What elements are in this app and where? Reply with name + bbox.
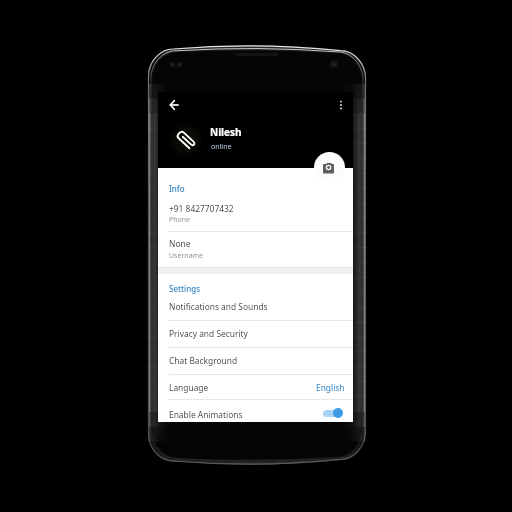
staticText: Language [169, 382, 209, 393]
button[interactable]: None [158, 232, 353, 266]
button[interactable]: Chat Background [158, 347, 353, 374]
staticText: Notifications and Sounds [169, 301, 268, 312]
staticText: Chat Background [169, 355, 238, 366]
button[interactable]: Enable Animations [158, 399, 353, 421]
button[interactable]: Profile photo [170, 124, 202, 156]
staticText: Info [169, 183, 185, 194]
button[interactable]: +91 8427707432 [158, 195, 353, 232]
button[interactable]: Notifications and Sounds [158, 293, 353, 320]
button[interactable]: Change photo [314, 152, 345, 183]
staticText: Enable Animations [169, 409, 243, 420]
staticText: Privacy and Security [169, 328, 248, 339]
staticText: Settings [169, 283, 201, 294]
staticText: Nilesh [210, 125, 242, 139]
staticText: Username [169, 251, 204, 261]
button[interactable]: Privacy and Security [158, 320, 353, 347]
button[interactable]: Back [162, 93, 186, 117]
staticText: None [169, 238, 191, 249]
staticText: English [316, 382, 345, 393]
staticText: Phone [169, 215, 191, 225]
staticText: +91 8427707432 [169, 203, 234, 214]
button[interactable]: Language [158, 374, 353, 399]
staticText: online [211, 142, 232, 152]
button[interactable]: More options [330, 94, 352, 116]
